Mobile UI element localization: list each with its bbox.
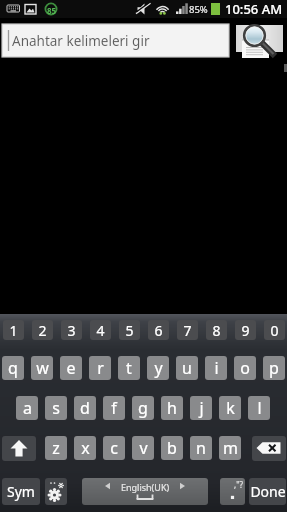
staticText: 5 [125,321,134,340]
staticText: English(UK) [121,481,170,493]
staticText: i [214,357,219,379]
button[interactable]: l [248,396,270,420]
button[interactable]: 1 [3,320,24,340]
staticText: m [223,437,238,459]
staticText: o [240,357,250,379]
button[interactable]: 4 [90,320,111,340]
staticText: 8 [212,321,221,340]
button[interactable]: c [103,436,125,460]
staticText: j [199,397,204,419]
staticText: z [52,437,60,459]
button[interactable]: 8 [206,320,227,340]
staticText: h [167,397,177,419]
button[interactable]: r [89,356,111,380]
button[interactable]: Settings [45,478,67,505]
staticText: 85 [47,5,57,16]
button[interactable]: p [263,356,285,380]
staticText: w [36,357,49,379]
staticText: d [80,397,90,419]
button[interactable]: 6 [148,320,169,340]
button[interactable]: m [219,436,241,460]
button[interactable]: 7 [177,320,198,340]
button[interactable]: h [161,396,183,420]
staticText: n [196,437,206,459]
staticText: 2 [38,321,47,340]
button[interactable]: n [190,436,212,460]
button[interactable]: Sym [2,478,40,505]
button[interactable]: v [132,436,154,460]
button[interactable]: u [176,356,198,380]
button[interactable]: o [234,356,256,380]
staticText: ,"? [234,479,243,490]
staticText: 10:56 AM [225,0,283,18]
staticText: c [110,437,118,459]
button[interactable]: Shift [2,436,36,461]
staticText: Sym [7,482,35,501]
button[interactable]: f [103,396,125,420]
button[interactable]: Search [236,25,283,58]
staticText: l [257,397,262,419]
button[interactable]: e [60,356,82,380]
button[interactable]: q [2,356,24,380]
staticText: 0 [270,321,279,340]
staticText: f [111,397,117,419]
button[interactable]: t [118,356,140,380]
staticText: q [8,357,18,379]
button[interactable]: 3 [61,320,82,340]
staticText: s [52,397,60,419]
staticText: k [226,397,235,419]
button[interactable]: 0 [264,320,285,340]
button[interactable]: 5 [119,320,140,340]
button[interactable]: Done [249,478,286,505]
staticText: b [167,437,177,459]
staticText: 4 [96,321,105,340]
button[interactable]: g [132,396,154,420]
button[interactable]: x [74,436,96,460]
staticText: e [66,357,76,379]
button[interactable]: b [161,436,183,460]
button[interactable]: Period [220,478,245,505]
staticText: u [182,357,192,379]
button[interactable]: w [31,356,53,380]
staticText: t [126,357,132,379]
button[interactable]: a [16,396,38,420]
button[interactable]: k [219,396,241,420]
button[interactable]: English(UK) [82,478,208,505]
staticText: x [81,437,90,459]
button[interactable]: 9 [235,320,256,340]
staticText: Anahtar kelimeleri gir [12,32,150,50]
staticText: 3 [67,321,76,340]
button[interactable]: i [205,356,227,380]
button[interactable]: d [74,396,96,420]
staticText: v [139,437,148,459]
button[interactable]: Backspace [252,436,286,461]
staticText: y [154,357,163,379]
staticText: 85% [189,3,208,16]
button[interactable]: 2 [32,320,53,340]
staticText: 9 [241,321,250,340]
staticText: 7 [183,321,192,340]
button[interactable]: y [147,356,169,380]
button[interactable]: Anahtar kelimeleri gir [2,24,229,57]
button[interactable]: s [45,396,67,420]
staticText: p [269,357,279,379]
staticText: g [138,397,148,419]
staticText: Done [250,482,286,501]
button[interactable]: z [45,436,67,460]
staticText: a [23,397,32,419]
staticText: 6 [154,321,163,340]
staticText: r [97,357,104,379]
staticText: 1 [9,321,18,340]
button[interactable]: j [190,396,212,420]
